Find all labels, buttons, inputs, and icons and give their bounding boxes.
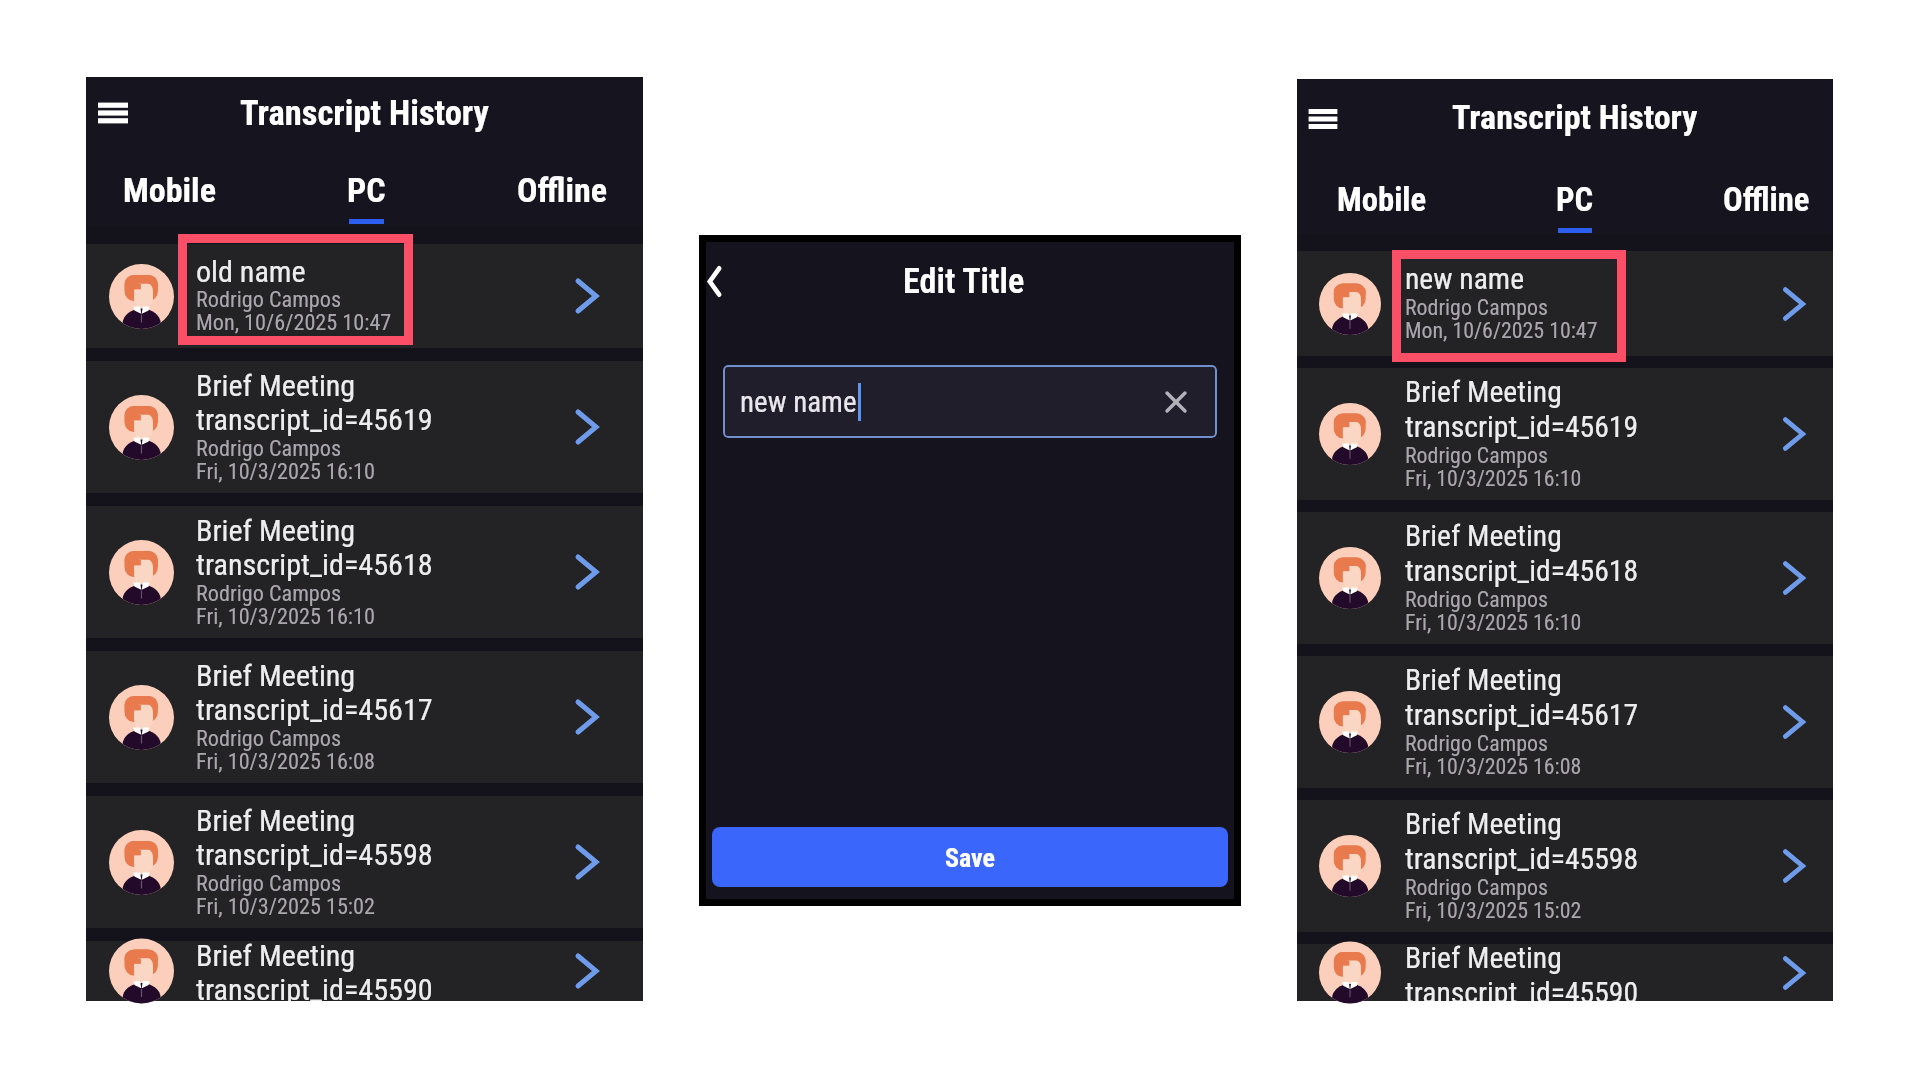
button[interactable]: Open navigation menu [1302, 95, 1344, 137]
button[interactable]: Open transcript [1755, 656, 1833, 788]
button[interactable]: Offline [1723, 152, 1810, 234]
button[interactable]: Open transcript [1755, 944, 1833, 1001]
button[interactable]: Mobile [123, 147, 216, 226]
staticText: Brief Meeting [1405, 810, 1562, 841]
staticText: Rodrigo Campos [1405, 444, 1548, 468]
button[interactable]: Open navigation menu [91, 90, 135, 134]
staticText: transcript_id=45590 [1405, 975, 1639, 1001]
staticText: Fri, 10/3/2025 16:10 [1405, 612, 1582, 635]
staticText: Rodrigo Campos [1405, 732, 1548, 756]
staticText: Fri, 10/3/2025 16:08 [1405, 756, 1582, 779]
staticText: transcript_id=45617 [1405, 697, 1639, 732]
staticText: Brief Meeting [196, 941, 356, 972]
staticText: Brief Meeting [1405, 666, 1562, 697]
staticText: Brief Meeting [196, 661, 356, 692]
button[interactable]: Open transcript [530, 941, 643, 1001]
staticText: old name [196, 257, 306, 288]
button[interactable]: Brief Meeting [86, 651, 643, 783]
staticText: transcript_id=45619 [196, 402, 433, 437]
staticText: Rodrigo Campos [196, 288, 342, 312]
button[interactable]: Open transcript [530, 651, 643, 783]
staticText: Fri, 10/3/2025 16:10 [1405, 468, 1582, 491]
staticText: Fri, 10/3/2025 16:10 [196, 606, 375, 629]
button[interactable]: Open transcript [1755, 251, 1833, 356]
button[interactable]: Open transcript [530, 244, 643, 348]
button[interactable]: Back [706, 260, 752, 306]
staticText: transcript_id=45598 [196, 837, 433, 872]
staticText: transcript_id=45617 [196, 692, 433, 727]
button[interactable]: Open transcript [1755, 800, 1833, 932]
staticText: transcript_id=45618 [196, 547, 433, 582]
button[interactable]: Mobile [1337, 152, 1427, 234]
button[interactable]: Offline [517, 147, 607, 226]
staticText: transcript_id=45590 [196, 972, 433, 1001]
staticText: PC [347, 170, 386, 210]
button[interactable]: Brief Meeting [1297, 800, 1833, 932]
staticText: Rodrigo Campos [196, 872, 342, 896]
button[interactable]: Open transcript [530, 796, 643, 928]
button[interactable]: Brief Meeting [1297, 944, 1833, 1001]
staticText: Mon, 10/6/2025 10:47 [196, 312, 392, 335]
button[interactable]: Save [712, 827, 1228, 887]
staticText: Fri, 10/3/2025 15:02 [196, 896, 375, 919]
staticText: Rodrigo Campos [1405, 296, 1548, 320]
staticText: Rodrigo Campos [1405, 588, 1548, 612]
staticText: Mon, 10/6/2025 10:47 [1405, 320, 1598, 343]
staticText: Brief Meeting [1405, 378, 1562, 409]
button[interactable]: Brief Meeting [86, 506, 643, 638]
staticText: Transcript History [240, 93, 489, 133]
staticText: Brief Meeting [1405, 522, 1562, 553]
staticText: Transcript History [1452, 97, 1698, 137]
staticText: Brief Meeting [1405, 944, 1562, 975]
staticText: Mobile [1337, 181, 1427, 219]
staticText: Rodrigo Campos [196, 582, 342, 606]
button[interactable]: Brief Meeting [1297, 512, 1833, 644]
button[interactable]: Brief Meeting [86, 796, 643, 928]
staticText: Rodrigo Campos [196, 727, 342, 751]
staticText: transcript_id=45618 [1405, 553, 1639, 588]
button[interactable]: Brief Meeting [1297, 656, 1833, 788]
staticText: new name [1405, 265, 1525, 296]
button[interactable]: new name [723, 365, 1217, 438]
button[interactable]: old name [86, 244, 643, 348]
staticText: Brief Meeting [196, 806, 356, 837]
button[interactable]: new name [1297, 251, 1833, 356]
staticText: Save [945, 843, 996, 873]
staticText: Fri, 10/3/2025 16:10 [196, 461, 375, 484]
button[interactable]: Open transcript [530, 361, 643, 493]
button[interactable]: PC [347, 147, 386, 226]
staticText: Brief Meeting [196, 516, 356, 547]
staticText: new name [740, 385, 857, 419]
button[interactable]: Brief Meeting [1297, 368, 1833, 500]
button[interactable]: Open transcript [530, 506, 643, 638]
button[interactable]: Open transcript [1755, 512, 1833, 644]
button[interactable]: Brief Meeting [86, 941, 643, 1001]
button[interactable]: Clear text [1151, 377, 1201, 427]
staticText: Fri, 10/3/2025 15:02 [1405, 900, 1582, 923]
button[interactable]: Brief Meeting [86, 361, 643, 493]
staticText: Brief Meeting [196, 371, 356, 402]
staticText: Mobile [123, 170, 216, 210]
staticText: Offline [1723, 181, 1810, 219]
staticText: Fri, 10/3/2025 16:08 [196, 751, 375, 774]
staticText: Rodrigo Campos [196, 437, 342, 461]
button[interactable]: Open transcript [1755, 368, 1833, 500]
staticText: PC [1556, 181, 1594, 219]
staticText: Offline [517, 170, 607, 210]
staticText: Rodrigo Campos [1405, 876, 1548, 900]
button[interactable]: PC [1556, 152, 1594, 234]
staticText: transcript_id=45598 [1405, 841, 1639, 876]
staticText: Edit Title [903, 261, 1025, 301]
staticText: transcript_id=45619 [1405, 409, 1639, 444]
